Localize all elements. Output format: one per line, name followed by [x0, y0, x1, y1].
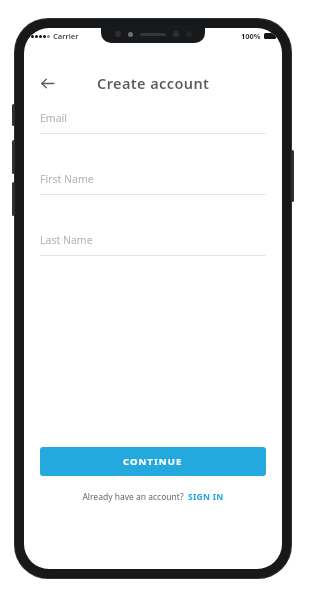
button[interactable]: First Name	[40, 172, 266, 195]
staticText: Create account	[97, 73, 210, 93]
staticText: First Name	[40, 172, 94, 186]
button[interactable]: Back	[32, 68, 62, 98]
button[interactable]: Last Name	[40, 233, 266, 256]
staticText: Already have an account?	[82, 491, 184, 503]
staticText: SIGN IN	[188, 491, 224, 503]
staticText: Last Name	[40, 233, 93, 247]
staticText: CONTINUE	[123, 455, 183, 468]
button[interactable]: SIGN IN	[188, 491, 224, 503]
staticText: Email	[40, 111, 67, 125]
staticText: Carrier	[53, 31, 79, 41]
button[interactable]: Email	[40, 111, 266, 134]
button[interactable]: CONTINUE	[40, 447, 266, 476]
staticText: 100%	[241, 31, 261, 41]
